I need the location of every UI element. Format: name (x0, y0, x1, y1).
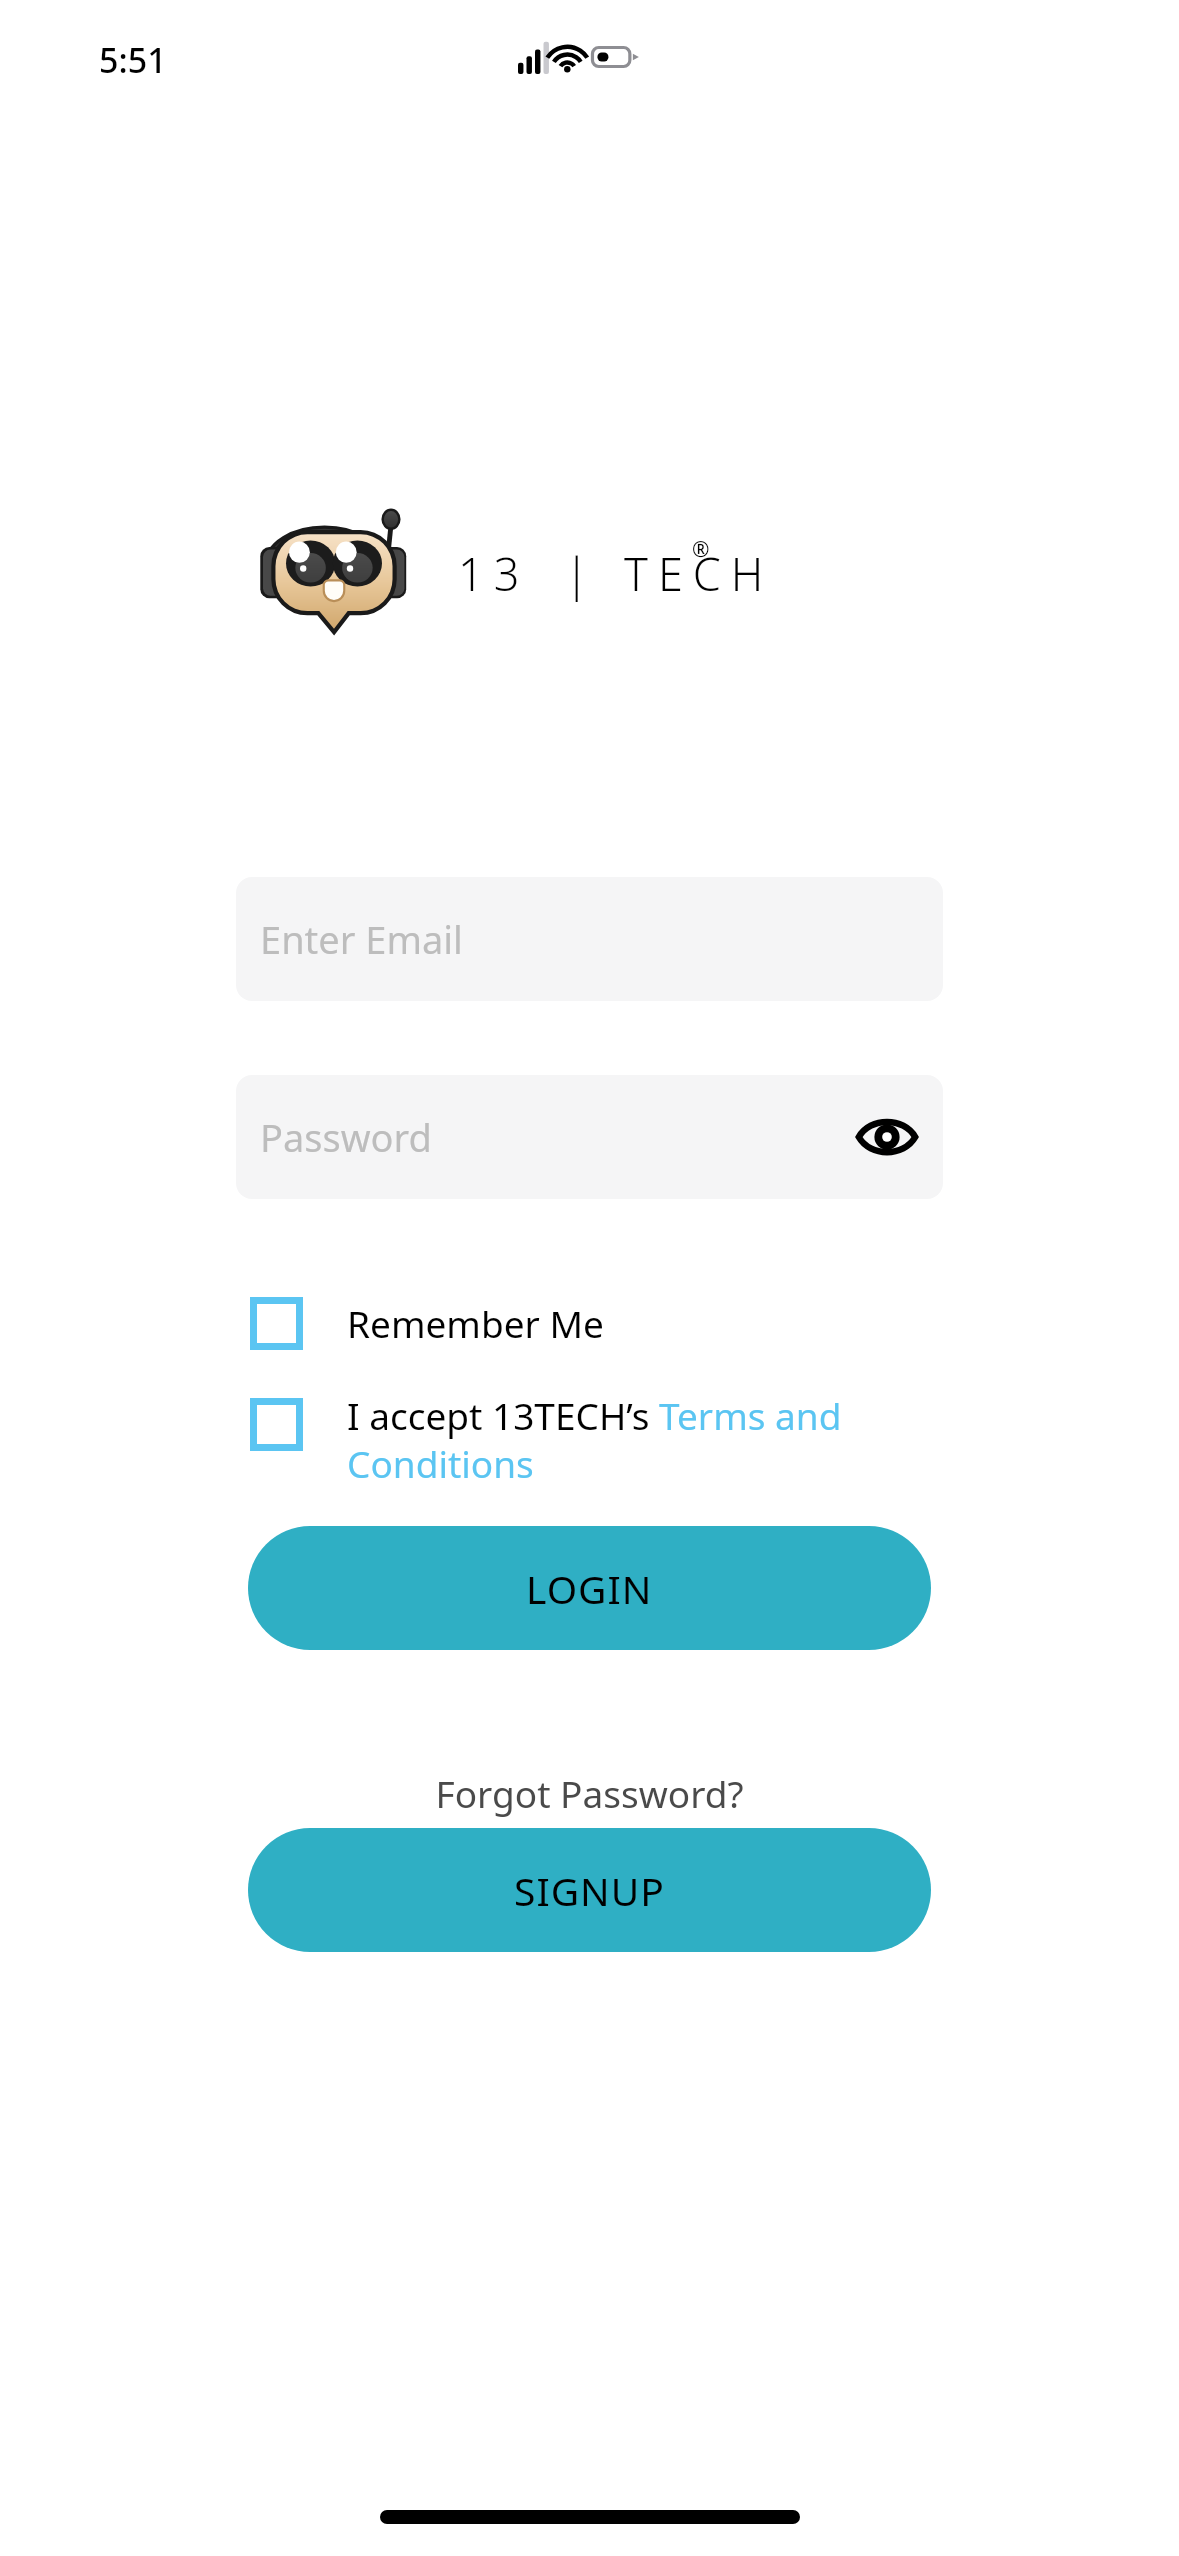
button[interactable]: Password (236, 1075, 943, 1199)
staticText: I accept 13TECH’s Terms and Conditions (347, 1390, 890, 1489)
button[interactable]: SIGNUP (248, 1828, 931, 1952)
button[interactable]: I accept 13TECH’s Terms and Conditions (250, 1390, 890, 1489)
button[interactable]: Show password (849, 1099, 925, 1175)
button[interactable]: Remember Me (250, 1286, 604, 1360)
staticText: Password (260, 1111, 432, 1163)
staticText: 5:51 (99, 37, 167, 83)
button[interactable]: Enter Email (236, 877, 943, 1001)
staticText: 13 | TECH (458, 543, 774, 604)
button[interactable]: LOGIN (248, 1526, 931, 1650)
staticText: LOGIN (526, 1562, 653, 1615)
staticText: Enter Email (260, 913, 463, 965)
staticText: ® (692, 535, 710, 564)
button[interactable]: Forgot Password? (419, 1758, 760, 1828)
staticText: SIGNUP (514, 1864, 665, 1917)
staticText: Remember Me (347, 1298, 604, 1348)
staticText: Forgot Password? (435, 1768, 744, 1818)
